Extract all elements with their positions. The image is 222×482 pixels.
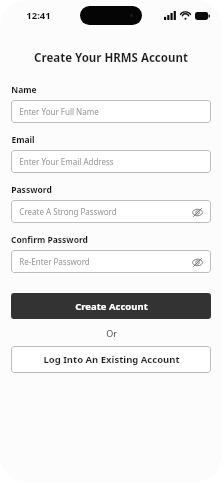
button[interactable]: Enter Your Full Name [11, 100, 211, 123]
staticText: Log Into An Existing Account [43, 353, 180, 366]
button[interactable]: Show password [191, 206, 203, 218]
staticText: Enter Your Email Address [19, 156, 114, 167]
staticText: Re-Enter Password [19, 256, 90, 267]
button[interactable]: Enter Your Email Address [11, 150, 211, 173]
staticText: Create Account [75, 300, 148, 313]
staticText: Enter Your Full Name [19, 106, 99, 117]
button[interactable]: Log Into An Existing Account [11, 346, 211, 373]
staticText: Email [11, 134, 35, 146]
staticText: Create A Strong Password [19, 206, 117, 217]
staticText: Name [11, 84, 37, 96]
button[interactable]: Create Account [11, 293, 211, 319]
button[interactable]: Create A Strong Password [11, 200, 211, 223]
staticText: Create Your HRMS Account [34, 50, 188, 66]
button[interactable]: Re-Enter Password [11, 250, 211, 273]
button[interactable]: Show password [191, 256, 203, 268]
staticText: Or [106, 327, 117, 339]
staticText: Password [11, 184, 52, 196]
staticText: 12:41 [26, 9, 51, 22]
staticText: Confirm Password [11, 234, 88, 246]
